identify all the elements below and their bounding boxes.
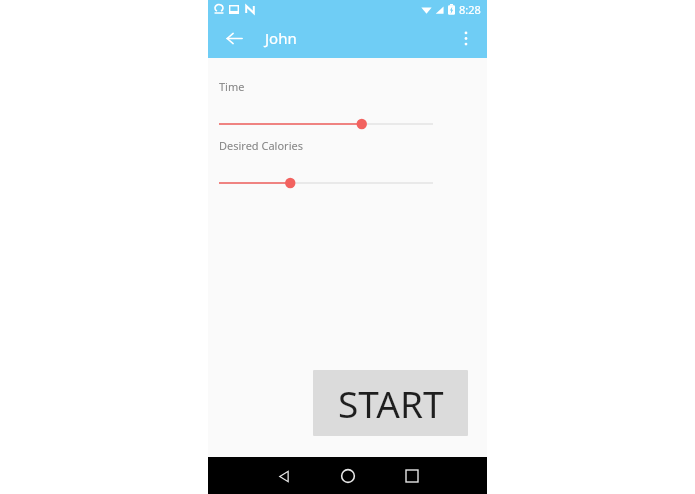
staticText: Time (219, 79, 245, 94)
button[interactable]: Time slider (214, 113, 438, 135)
staticText: Desired Calories (219, 138, 303, 153)
staticText: 8:28 (459, 2, 481, 17)
button[interactable]: Home (331, 459, 365, 493)
button[interactable]: Desired Calories slider (214, 172, 438, 194)
button[interactable]: Back (217, 21, 251, 55)
staticText: START (338, 378, 444, 428)
button[interactable]: START (313, 370, 468, 436)
button[interactable]: More options (450, 22, 482, 54)
button[interactable]: Recent apps (395, 459, 429, 493)
staticText: John (265, 28, 297, 48)
button[interactable]: Back (267, 459, 301, 493)
